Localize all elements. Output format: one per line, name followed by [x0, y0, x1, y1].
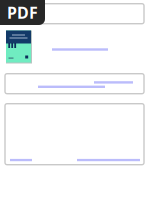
staticText: PDF — [7, 2, 38, 23]
button[interactable]: PDF — [0, 0, 45, 25]
